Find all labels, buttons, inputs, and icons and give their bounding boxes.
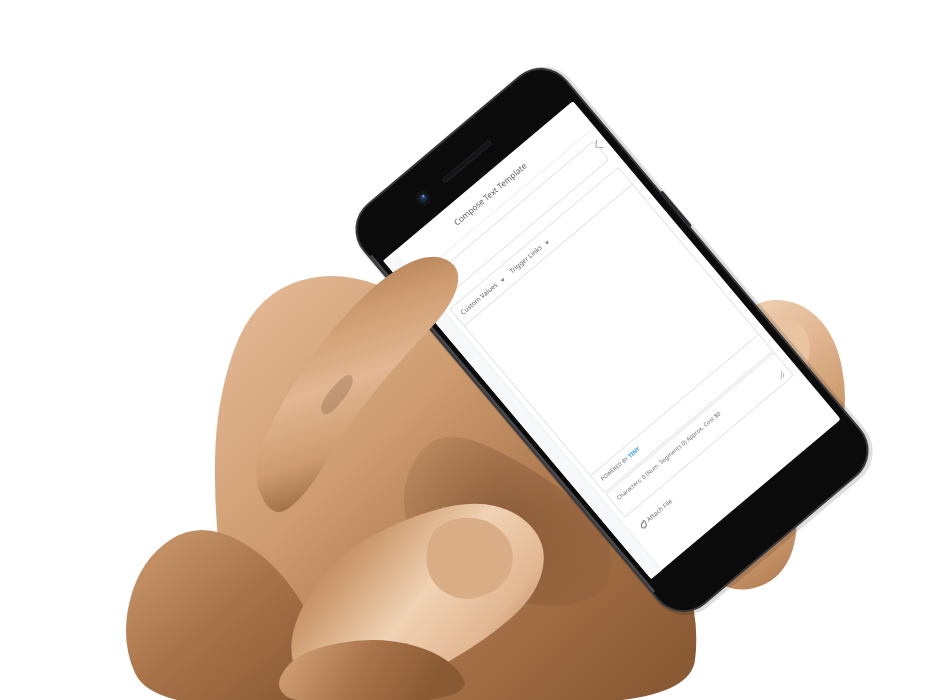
- button[interactable]: Compose Text Template shown on a phone h…: [0, 0, 942, 700]
